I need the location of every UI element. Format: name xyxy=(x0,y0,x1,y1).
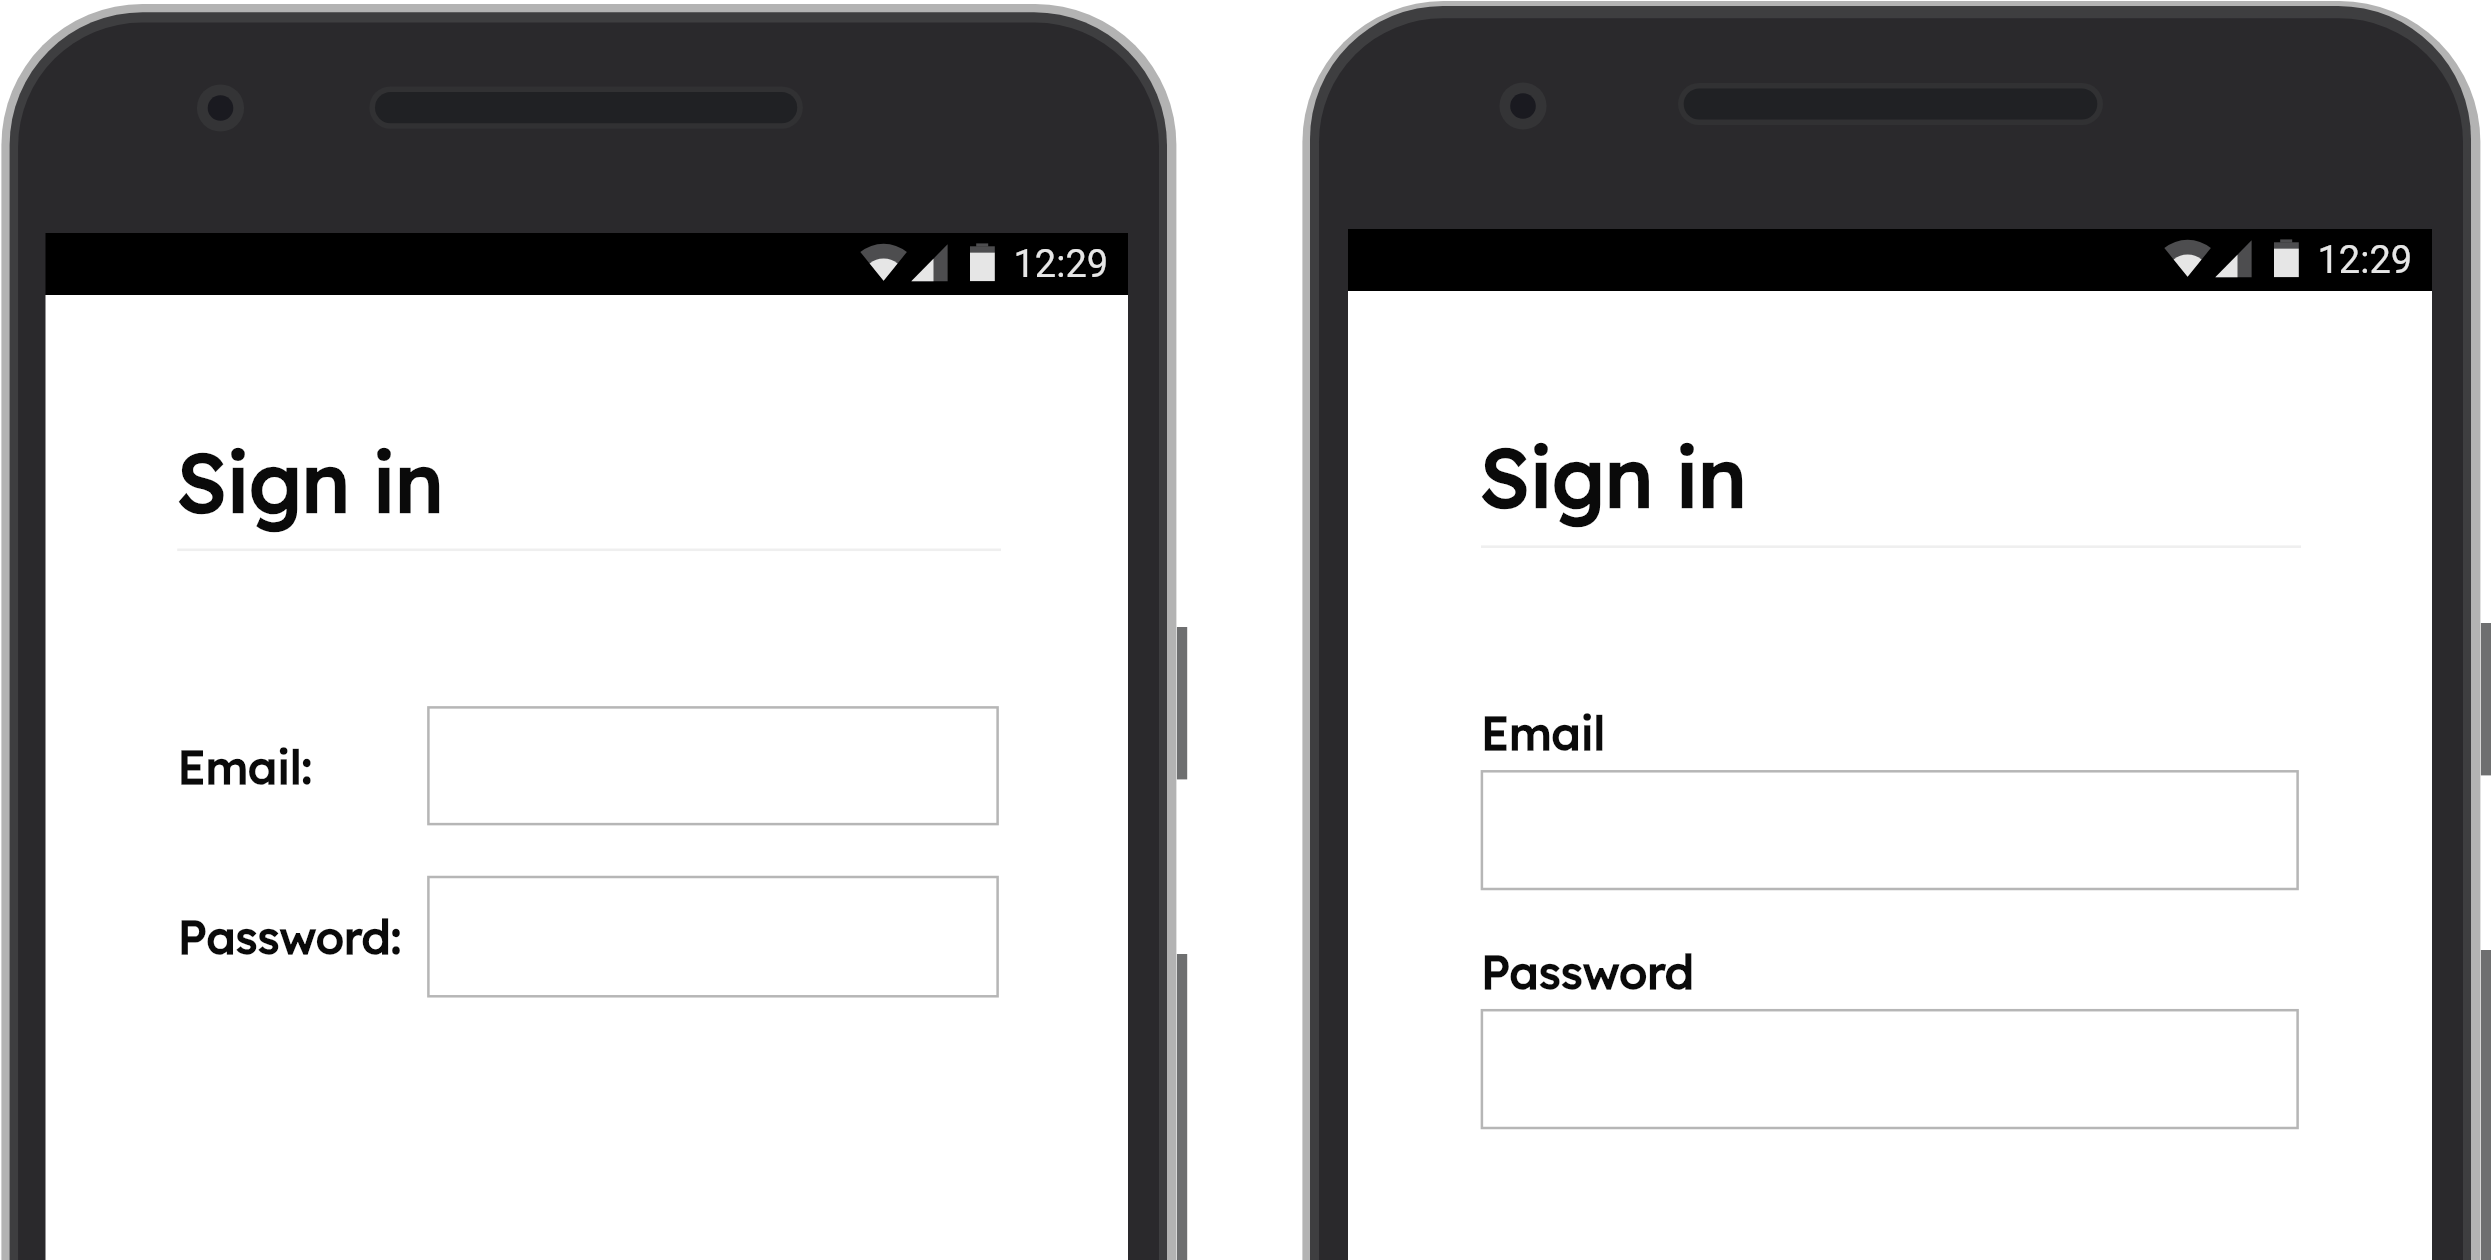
button[interactable]: Sign in xyxy=(1481,436,2301,548)
button[interactable]: Email field xyxy=(428,707,997,824)
button[interactable]: Email field xyxy=(1481,771,2297,889)
button[interactable]: Sign in xyxy=(177,440,1001,552)
button[interactable]: Password field xyxy=(1481,1010,2297,1128)
button[interactable]: Status bar xyxy=(1348,229,2432,291)
button[interactable]: Status bar xyxy=(45,233,1128,295)
button[interactable]: Password field xyxy=(428,877,997,996)
